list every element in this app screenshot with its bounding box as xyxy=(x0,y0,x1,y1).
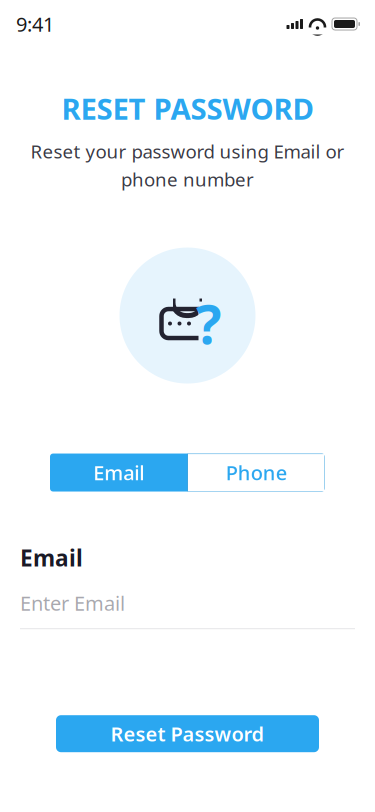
staticText: Reset your password using Email or xyxy=(30,139,344,164)
staticText: phone number xyxy=(121,167,254,191)
staticText: ? xyxy=(196,288,221,359)
staticText: Email xyxy=(93,459,144,486)
staticText: Enter Email xyxy=(20,590,125,616)
button[interactable]: Email xyxy=(50,453,187,491)
staticText: Email xyxy=(20,542,83,573)
button[interactable]: Reset Password xyxy=(56,715,319,752)
staticText: Phone xyxy=(226,459,287,486)
button[interactable]: Phone xyxy=(187,453,325,491)
staticText: Reset Password xyxy=(110,720,264,747)
staticText: 9:41 xyxy=(16,11,54,37)
staticText: RESET PASSWORD xyxy=(61,89,313,128)
